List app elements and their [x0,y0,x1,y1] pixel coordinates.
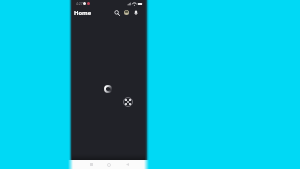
staticText: Home [74,9,92,17]
staticText: 4:27 [76,1,83,6]
button[interactable]: Search [112,8,121,17]
button[interactable]: Profile [122,8,131,17]
button[interactable]: Notifications [131,8,140,17]
button[interactable]: Home [103,160,115,169]
button[interactable]: Back [121,160,133,169]
button[interactable]: Recents [85,160,97,169]
